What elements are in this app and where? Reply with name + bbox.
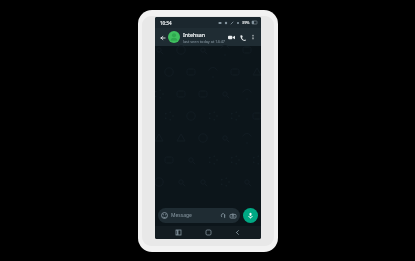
button[interactable]: Intehsan: [183, 31, 226, 44]
button[interactable]: Back: [158, 33, 167, 42]
staticText: last seen today at 14:47: [183, 39, 225, 44]
button[interactable]: Attach: [219, 212, 227, 220]
button[interactable]: Back: [231, 226, 244, 239]
staticText: 10:34: [160, 20, 172, 26]
button[interactable]: Camera: [229, 212, 237, 220]
button[interactable]: Home: [202, 226, 215, 239]
button[interactable]: Message: [158, 208, 240, 223]
button[interactable]: More options: [248, 32, 258, 42]
staticText: Intehsan: [183, 31, 206, 38]
button[interactable]: Video call: [226, 32, 237, 43]
button[interactable]: Contact photo: [168, 31, 180, 43]
button[interactable]: Voice call: [237, 32, 248, 43]
button[interactable]: Record voice message: [243, 208, 258, 223]
button[interactable]: Recents: [172, 226, 185, 239]
staticText: Message: [171, 212, 219, 219]
staticText: 39%: [242, 20, 250, 25]
